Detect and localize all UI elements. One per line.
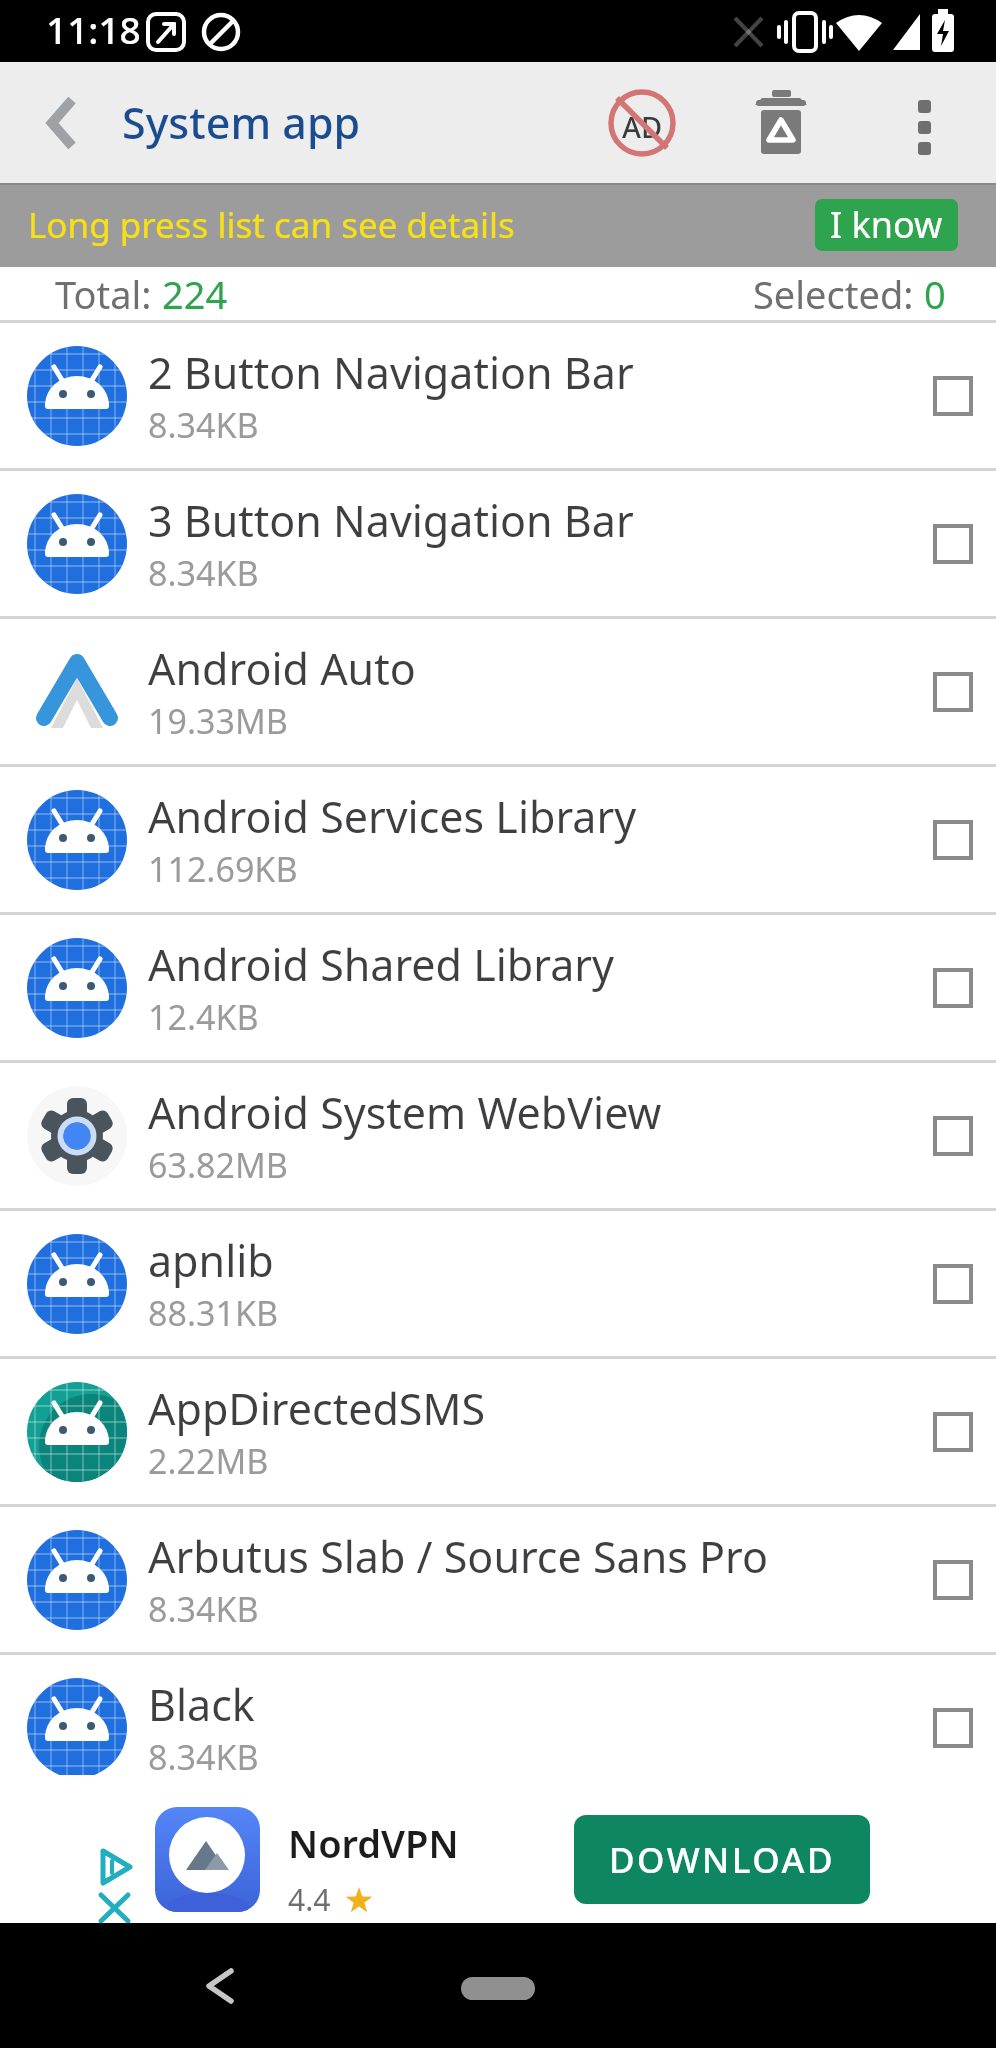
staticText: 11:18 — [46, 4, 141, 54]
staticText: 2 Button Navigation Bar — [148, 343, 634, 402]
staticText: NordVPN — [288, 1817, 459, 1869]
staticText: 112.69KB — [148, 846, 298, 892]
staticText: 12.4KB — [148, 994, 259, 1040]
staticText: System app — [122, 93, 361, 152]
staticText: DOWNLOAD — [609, 1836, 836, 1884]
button[interactable]: DOWNLOAD — [574, 1815, 870, 1904]
staticText: Android Shared Library — [148, 935, 614, 994]
staticText: 19.33MB — [148, 698, 288, 744]
staticText: 0 — [924, 268, 946, 320]
button[interactable]: Android System WebView — [0, 1063, 996, 1211]
staticText: AD — [622, 107, 663, 146]
button[interactable]: 3 Button Navigation Bar — [0, 471, 996, 619]
button[interactable] — [898, 100, 944, 146]
button[interactable] — [748, 90, 814, 156]
button[interactable] — [155, 1807, 260, 1912]
staticText: Total: — [55, 268, 162, 320]
staticText: 224 — [162, 268, 228, 320]
button[interactable]: I know — [815, 199, 958, 251]
button[interactable] — [461, 1977, 535, 2000]
button[interactable]: AppDirectedSMS — [0, 1359, 996, 1507]
staticText: I know — [830, 200, 943, 249]
staticText: AppDirectedSMS — [148, 1379, 486, 1438]
staticText: 4.4 — [288, 1879, 331, 1920]
staticText: 8.34KB — [148, 1586, 259, 1632]
staticText: Black — [148, 1675, 255, 1734]
button[interactable]: Arbutus Slab / Source Sans Pro — [0, 1507, 996, 1655]
button[interactable]: apnlib — [0, 1211, 996, 1359]
staticText: 3 Button Navigation Bar — [148, 491, 634, 550]
staticText: 8.34KB — [148, 402, 259, 448]
button[interactable] — [30, 93, 90, 153]
staticText: 8.34KB — [148, 550, 259, 596]
button[interactable]: Android Shared Library — [0, 915, 996, 1063]
staticText: 88.31KB — [148, 1290, 279, 1336]
button[interactable]: 2 Button Navigation Bar — [0, 323, 996, 471]
button[interactable]: Android Auto — [0, 619, 996, 767]
staticText: 2.22MB — [148, 1438, 269, 1484]
staticText: 8.34KB — [148, 1734, 259, 1780]
staticText: Selected: — [753, 268, 924, 320]
button[interactable]: Black — [0, 1655, 996, 1803]
staticText: 63.82MB — [148, 1142, 288, 1188]
staticText: Android Auto — [148, 639, 416, 698]
button[interactable]: AD — [606, 89, 674, 157]
button[interactable] — [185, 1951, 255, 2021]
staticText: Android System WebView — [148, 1083, 662, 1142]
staticText: Long press list can see details — [28, 201, 515, 249]
button[interactable]: Android Services Library — [0, 767, 996, 915]
staticText: Arbutus Slab / Source Sans Pro — [148, 1527, 768, 1586]
staticText: apnlib — [148, 1231, 274, 1290]
staticText: Android Services Library — [148, 787, 637, 846]
